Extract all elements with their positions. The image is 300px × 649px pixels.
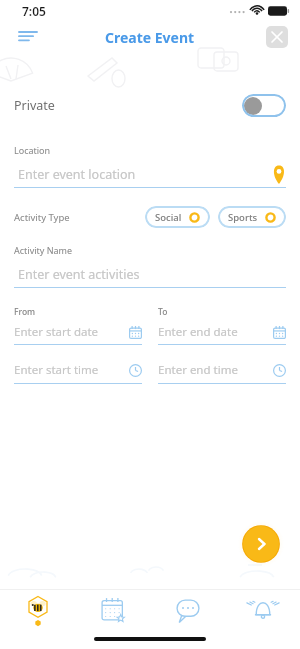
staticText: To	[158, 306, 168, 318]
button[interactable]: Social	[145, 206, 210, 228]
button[interactable]: Events	[75, 589, 150, 629]
button[interactable]: Location	[0, 144, 300, 188]
button[interactable]: Menu	[14, 23, 42, 51]
button[interactable]: Close	[266, 26, 288, 48]
staticText: Enter event activities	[18, 266, 140, 283]
button[interactable]: Chat	[150, 589, 225, 629]
staticText: Enter end time	[158, 362, 238, 378]
button[interactable]: Sports	[218, 206, 286, 228]
staticText: Enter end date	[158, 324, 238, 340]
button[interactable]: From	[14, 306, 142, 345]
staticText: Activity Type	[14, 211, 70, 224]
staticText: Enter start date	[14, 324, 99, 340]
staticText: Location	[14, 144, 51, 156]
button[interactable]: Activity Name	[0, 244, 300, 288]
staticText: 7:05	[22, 3, 46, 19]
button[interactable]: Enter end time	[158, 359, 286, 384]
staticText: Enter event location	[18, 166, 136, 183]
button[interactable]: To	[158, 306, 286, 345]
staticText: From	[14, 306, 36, 318]
button[interactable]: Next	[238, 521, 284, 567]
staticText: Create Event	[105, 28, 195, 47]
staticText: Sports	[228, 211, 258, 224]
staticText: Enter start time	[14, 362, 99, 378]
button[interactable]: Alerts	[225, 589, 300, 629]
staticText: Activity Name	[14, 244, 73, 256]
button[interactable]: Home	[0, 589, 75, 629]
button[interactable]: Enter start time	[14, 359, 142, 384]
button[interactable]: Private	[0, 90, 300, 120]
staticText: Private	[14, 97, 55, 114]
staticText: Social	[155, 211, 182, 224]
